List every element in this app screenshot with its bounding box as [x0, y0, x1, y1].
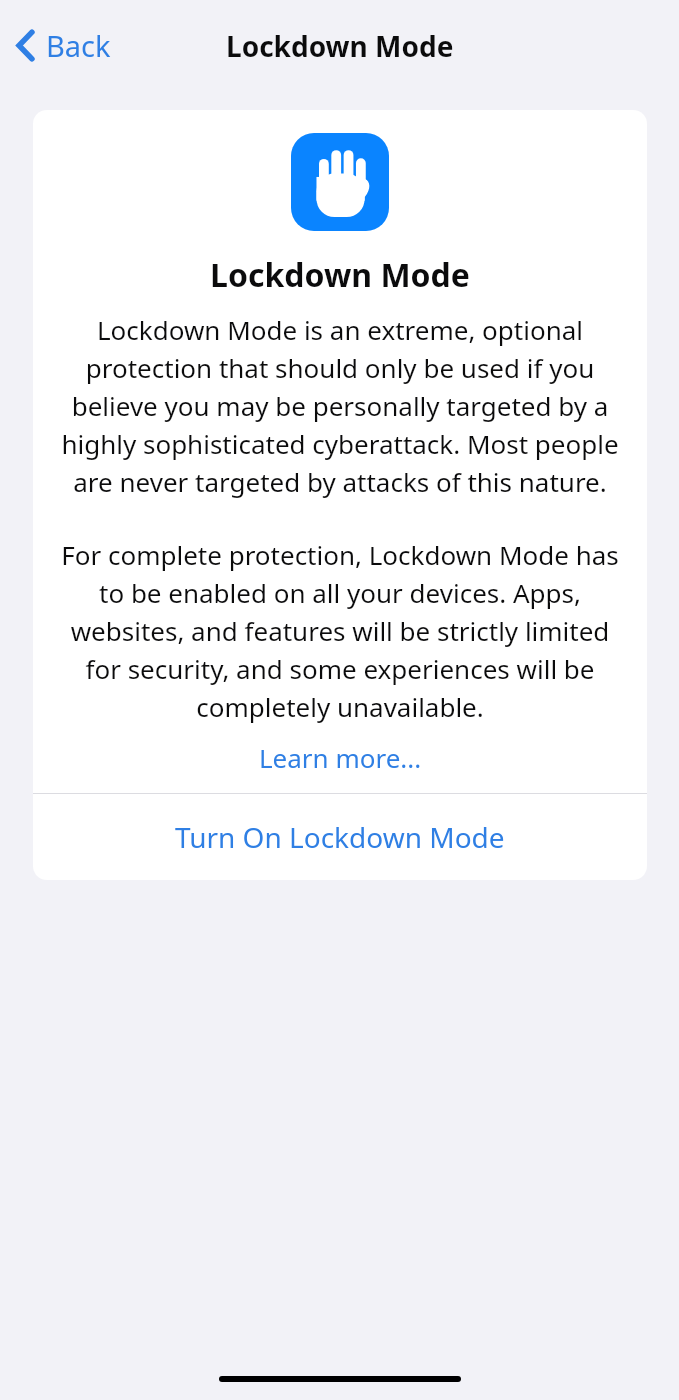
- button[interactable]: Turn On Lockdown Mode: [33, 794, 647, 880]
- button[interactable]: Learn more...: [247, 736, 434, 779]
- staticText: Lockdown Mode is an extreme, optional pr…: [60, 312, 620, 499]
- staticText: Turn On Lockdown Mode: [175, 818, 505, 856]
- staticText: For complete protection, Lockdown Mode h…: [60, 537, 620, 724]
- staticText: Lockdown Mode: [210, 253, 470, 297]
- staticText: Learn more...: [259, 740, 422, 775]
- button[interactable]: Back: [0, 20, 127, 71]
- staticText: Back: [46, 26, 111, 65]
- other: Lockdown Mode icon: [312, 147, 368, 217]
- staticText: Lockdown Mode: [226, 27, 454, 65]
